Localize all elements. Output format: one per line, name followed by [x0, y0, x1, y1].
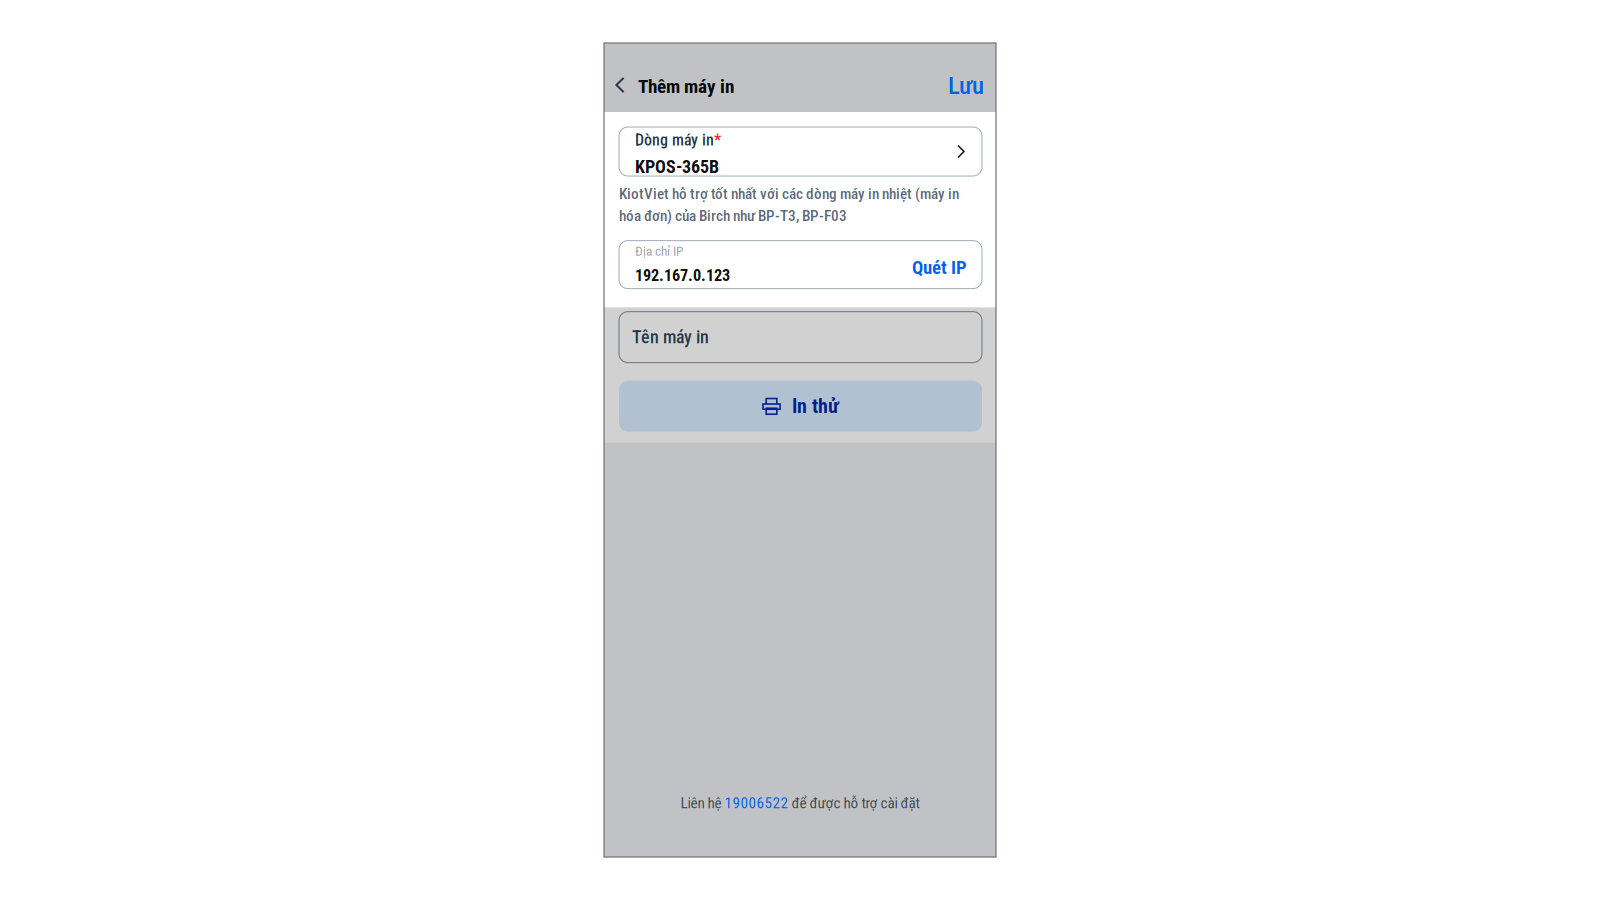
- button[interactable]: Dòng máy in: [619, 127, 982, 176]
- staticText: KiotViet hỗ trợ tốt nhất với các dòng má…: [619, 185, 959, 225]
- staticText: để được hỗ trợ cài đặt: [788, 794, 919, 812]
- button[interactable]: Back: [604, 45, 638, 110]
- staticText: Quét IP: [912, 257, 967, 279]
- staticText: Tên máy in: [632, 327, 709, 348]
- staticText: Lưu: [948, 71, 984, 100]
- button[interactable]: Quét IP: [912, 243, 967, 287]
- button[interactable]: 19006522: [724, 794, 788, 812]
- staticText: In thử: [792, 394, 839, 418]
- staticText: 192.167.0.123: [635, 266, 730, 285]
- button[interactable]: Tên máy in: [619, 312, 982, 363]
- staticText: Địa chỉ IP: [635, 243, 683, 259]
- staticText: KPOS-365B: [635, 156, 719, 177]
- button[interactable]: In thử: [619, 381, 982, 432]
- staticText: Dòng máy in: [635, 131, 714, 149]
- staticText: *: [714, 131, 721, 149]
- staticText: Liên hệ: [680, 794, 724, 812]
- button[interactable]: Lưu: [936, 42, 996, 113]
- staticText: 19006522: [724, 794, 788, 812]
- staticText: Thêm máy in: [638, 75, 734, 98]
